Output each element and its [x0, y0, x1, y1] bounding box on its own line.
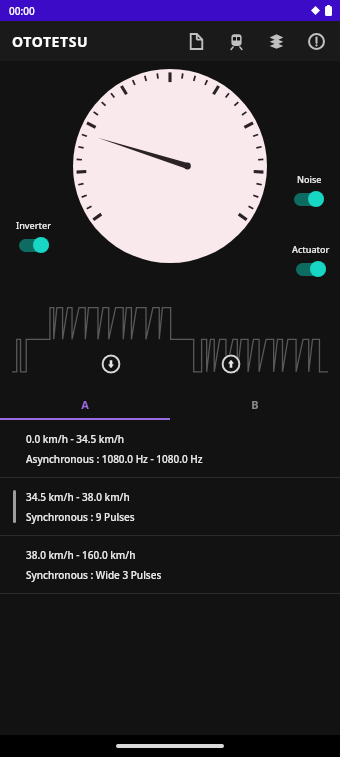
button[interactable]: 38.0 km/h - 160.0 km/h [0, 536, 340, 593]
button[interactable]: Document [182, 27, 210, 55]
staticText: OTOTETSU [12, 32, 89, 51]
button[interactable]: Info [302, 27, 330, 55]
staticText: B [251, 397, 259, 412]
button[interactable]: 0.0 km/h - 34.5 km/h [0, 420, 340, 477]
button[interactable]: Layers [262, 27, 290, 55]
staticText: Noise [297, 173, 322, 185]
button[interactable] [292, 190, 326, 208]
staticText: 34.5 km/h - 38.0 km/h [26, 490, 130, 504]
button[interactable] [294, 260, 328, 278]
button[interactable]: 34.5 km/h - 38.0 km/h [0, 478, 340, 535]
button[interactable]: Step up [221, 354, 241, 374]
staticText: A [81, 397, 89, 412]
staticText: Asynchronous : 1080.0 Hz - 1080.0 Hz [26, 452, 203, 466]
button[interactable] [17, 236, 51, 254]
button[interactable]: A [0, 390, 170, 418]
button[interactable]: Step down [101, 354, 121, 374]
staticText: Inverter [16, 219, 51, 231]
button[interactable]: B [170, 390, 340, 418]
staticText: Synchronous : Wide 3 Pulses [26, 568, 162, 582]
staticText: 38.0 km/h - 160.0 km/h [26, 548, 136, 562]
staticText: 00:00 [9, 4, 35, 18]
staticText: Synchronous : 9 Pulses [26, 510, 135, 524]
staticText: 0.0 km/h - 34.5 km/h [26, 432, 125, 446]
staticText: Actuator [292, 243, 330, 255]
button[interactable]: Train [222, 27, 250, 55]
